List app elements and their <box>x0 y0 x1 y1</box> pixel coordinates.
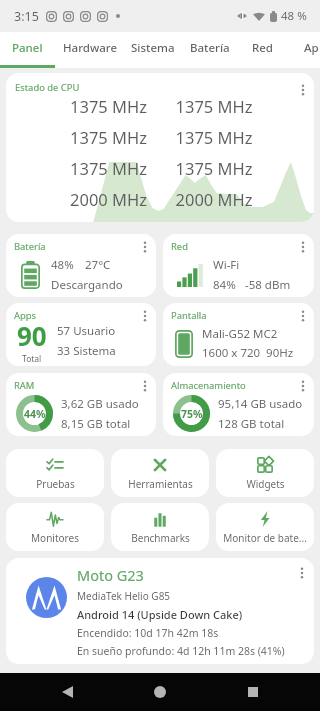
button[interactable]: More options <box>134 375 156 397</box>
button[interactable]: Almacenamiento <box>163 373 314 436</box>
staticText: 2000 MHz <box>161 188 267 210</box>
button[interactable]: RAM <box>6 373 156 436</box>
staticText: 84% <box>213 277 236 293</box>
staticText: 44% <box>24 407 46 421</box>
staticText: 1375 MHz <box>56 157 161 179</box>
button[interactable]: More options <box>292 305 314 327</box>
staticText: 2000 MHz <box>56 188 161 210</box>
staticText: 95,14 GB usado <box>218 396 303 412</box>
staticText: 1375 MHz <box>161 95 267 117</box>
staticText: MediaTek Helio G85 <box>77 589 171 603</box>
button[interactable]: Widgets <box>216 449 314 497</box>
staticText: 1375 MHz <box>161 126 267 148</box>
staticText: Total <box>22 353 42 363</box>
staticText: 1375 MHz <box>56 126 161 148</box>
staticText: 75% <box>181 407 203 421</box>
staticText: 1375 MHz <box>161 157 267 179</box>
staticText: 27°C <box>85 257 111 273</box>
staticText: 8,15 GB total <box>61 416 131 432</box>
staticText: Batería <box>190 40 230 56</box>
button[interactable]: Herramientas <box>111 449 209 497</box>
button[interactable]: Recents <box>231 673 275 711</box>
staticText: 57 Usuario <box>57 323 116 339</box>
staticText: Panel <box>12 40 43 56</box>
button[interactable]: Monitor de bate... <box>216 503 314 551</box>
staticText: Descargando <box>51 277 123 293</box>
staticText: Sistema <box>131 40 175 56</box>
button[interactable]: Back <box>45 673 89 711</box>
staticText: 1600 x 720 90Hz <box>202 345 294 361</box>
staticText: Red <box>252 40 273 56</box>
button[interactable]: Benchmarks <box>111 503 209 551</box>
button[interactable]: Panel <box>5 32 50 68</box>
staticText: RAM <box>14 379 35 392</box>
staticText: 33 Sistema <box>57 343 116 359</box>
staticText: Benchmarks <box>131 531 190 545</box>
staticText: Estado de CPU <box>15 81 80 94</box>
staticText: Batería <box>14 240 46 253</box>
button[interactable]: More options <box>292 236 314 258</box>
button[interactable]: Moto G23 <box>6 558 314 664</box>
button[interactable]: Batería <box>6 234 156 297</box>
staticText: 48 % <box>281 8 307 24</box>
staticText: Pantalla <box>171 309 207 322</box>
staticText: Monitor de bate... <box>223 531 307 545</box>
button[interactable]: Red <box>163 234 314 297</box>
staticText: Almacenamiento <box>171 379 246 392</box>
button[interactable]: Pruebas <box>6 449 104 497</box>
button[interactable]: More options <box>291 562 313 584</box>
staticText: Red <box>171 240 188 253</box>
button[interactable]: More options <box>292 375 314 397</box>
staticText: Pruebas <box>36 477 75 491</box>
staticText: 128 GB total <box>218 416 285 432</box>
staticText: Ap <box>304 40 319 56</box>
staticText: Hardware <box>63 40 118 56</box>
staticText: Apps <box>14 309 37 322</box>
button[interactable]: More options <box>134 305 156 327</box>
staticText: Android 14 (Upside Down Cake) <box>77 607 243 622</box>
button[interactable]: Apps <box>6 303 156 366</box>
staticText: Widgets <box>246 477 285 491</box>
staticText: Moto G23 <box>77 565 144 585</box>
button[interactable]: More options <box>134 236 156 258</box>
button[interactable]: Home <box>138 673 182 711</box>
staticText: En sueño profundo: 4d 12h 11m 28s (41%) <box>77 644 285 658</box>
staticText: Encendido: 10d 17h 42m 18s <box>77 626 219 640</box>
button[interactable]: Sistema <box>125 32 181 68</box>
button[interactable]: Hardware <box>57 32 124 68</box>
button[interactable]: Monitores <box>6 503 104 551</box>
button[interactable]: More options <box>292 79 314 101</box>
button[interactable]: Batería <box>182 32 237 68</box>
staticText: 3:15 <box>14 8 39 25</box>
staticText: Mali-G52 MC2 <box>202 326 278 342</box>
staticText: 48% <box>51 257 74 273</box>
staticText: Herramientas <box>128 477 193 491</box>
staticText: 1375 MHz <box>56 95 161 117</box>
staticText: -58 dBm <box>245 277 291 293</box>
button[interactable]: Pantalla <box>163 303 314 366</box>
staticText: Monitores <box>31 531 79 545</box>
staticText: 3,62 GB usado <box>61 396 139 412</box>
staticText: Wi-Fi <box>213 257 240 273</box>
staticText: 90 <box>17 318 47 353</box>
button[interactable]: Ap <box>295 32 320 68</box>
button[interactable]: Red <box>244 32 281 68</box>
